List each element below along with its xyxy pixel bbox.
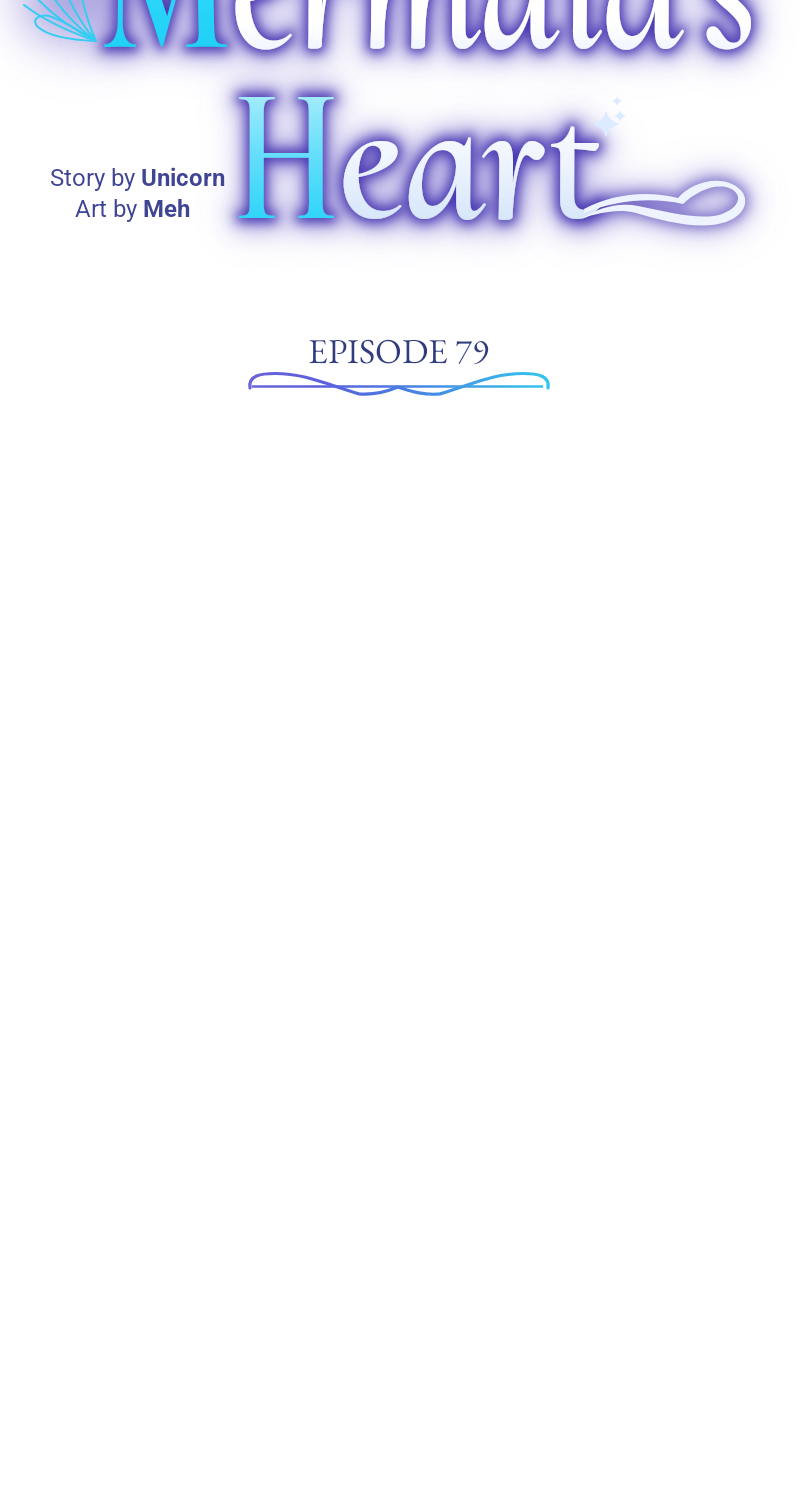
button[interactable]: Episode page, tap to show reader control… [0,0,800,1500]
button[interactable]: Episode 79 [240,320,560,400]
button[interactable]: Mermaid's Heart, series home [20,0,780,240]
